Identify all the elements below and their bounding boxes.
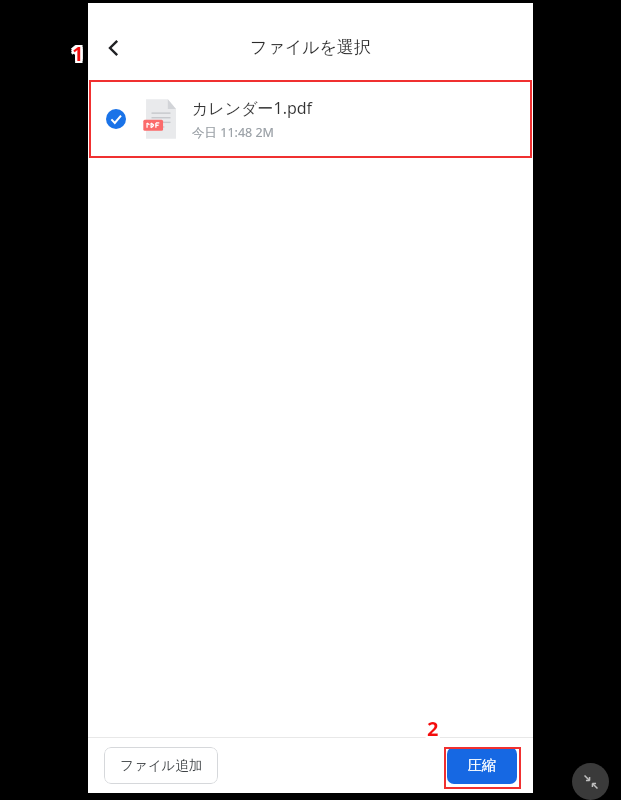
staticText: ファイルを選択 [250,37,371,58]
staticText: 2 [429,715,441,742]
button[interactable]: 戻る [92,26,136,70]
staticText: 圧縮 [468,757,496,775]
staticText: 1 [74,38,86,65]
staticText: 1 [70,42,82,69]
staticText: 2 [425,713,437,740]
button[interactable]: ファイル追加 [104,747,218,784]
staticText: 1 [70,40,82,67]
staticText: 2 [429,713,441,740]
staticText: 今日 11:48 2M [192,124,274,141]
button[interactable]: カレンダー1.pdf [88,80,533,157]
button[interactable]: 縮小 [572,763,609,800]
button[interactable]: 圧縮 [447,747,517,784]
staticText: 1 [72,40,84,67]
staticText: 2 [427,717,439,744]
staticText: 1 [72,38,84,65]
staticText: ファイル追加 [120,757,203,774]
staticText: 2 [429,717,441,744]
staticText: 1 [72,42,84,69]
staticText: 1 [70,38,82,65]
staticText: カレンダー1.pdf [192,97,313,119]
staticText: 2 [425,717,437,744]
staticText: 1 [74,42,86,69]
staticText: 1 [74,40,86,67]
staticText: 2 [427,715,439,742]
staticText: 2 [427,713,439,740]
staticText: 2 [425,715,437,742]
